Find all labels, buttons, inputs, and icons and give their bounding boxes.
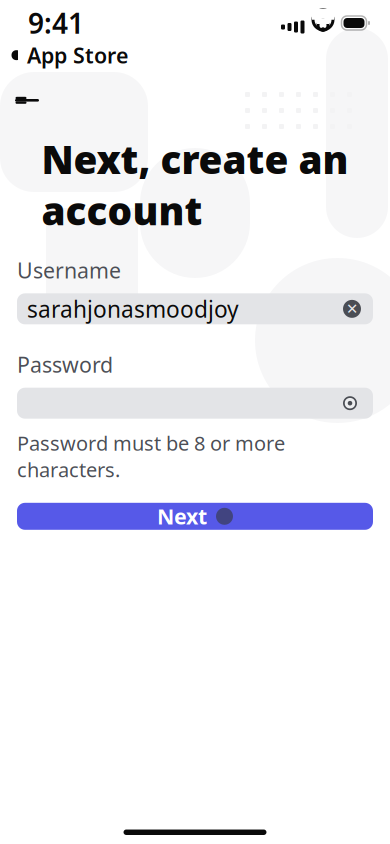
staticText: 9:41 — [28, 4, 84, 42]
staticText: Password — [17, 350, 113, 379]
staticText: sarahjonasmoodjoy — [27, 294, 239, 324]
staticText: Next, create an account — [41, 133, 348, 236]
button[interactable]: Show password — [338, 393, 362, 413]
staticText: Password must be 8 or more characters. — [17, 430, 285, 483]
button[interactable]: Back — [4, 79, 50, 121]
staticText: App Store — [27, 41, 128, 69]
staticText: Username — [17, 256, 121, 284]
staticText: ✕ — [346, 300, 358, 317]
staticText: Next — [157, 502, 207, 530]
button[interactable]: Next — [17, 503, 373, 530]
button[interactable]: sarahjonasmoodjoy — [17, 293, 373, 324]
